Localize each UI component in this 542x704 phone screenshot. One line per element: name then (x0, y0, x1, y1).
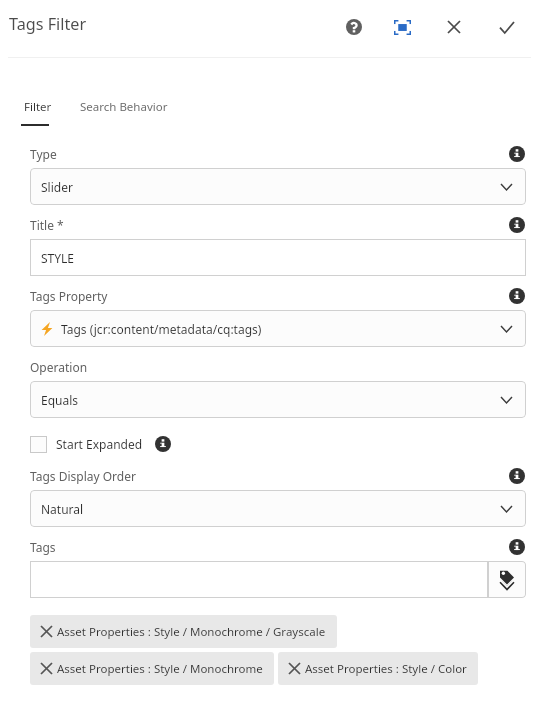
button[interactable]: Filter (21, 58, 54, 126)
staticText: Search Behavior (80, 99, 168, 115)
staticText: Tags Filter (9, 13, 87, 35)
staticText: Slider (41, 179, 73, 195)
button[interactable]: Asset Properties : Style / Color (278, 652, 478, 685)
button[interactable]: Info (508, 287, 526, 305)
button[interactable]: Info (508, 145, 526, 163)
staticText: Tags (30, 539, 56, 555)
button[interactable]: Search Behavior (80, 58, 168, 126)
staticText: Title * (30, 217, 64, 233)
button[interactable]: Asset Properties : Style / Monochrome / … (30, 615, 337, 648)
button[interactable]: Fullscreen (386, 11, 418, 43)
button[interactable]: Start Expanded (30, 435, 172, 453)
button[interactable]: STYLE (30, 239, 526, 276)
button[interactable]: Info (154, 435, 172, 453)
button[interactable]: Tags (jcr:content/metadata/cq:tags) (30, 310, 526, 347)
staticText: Filter (24, 99, 52, 115)
button[interactable]: Equals (30, 381, 526, 418)
staticText: Type (30, 146, 57, 162)
button[interactable]: Done (491, 11, 523, 43)
staticText: Asset Properties : Style / Monochrome / … (57, 624, 326, 640)
button[interactable]: Info (508, 538, 526, 556)
staticText: STYLE (41, 250, 75, 266)
staticText: Equals (41, 392, 79, 408)
button[interactable]: Info (508, 216, 526, 234)
button[interactable]: Help (338, 11, 370, 43)
button[interactable]: Natural (30, 490, 526, 527)
button[interactable] (30, 561, 488, 598)
staticText: Operation (30, 359, 88, 375)
button[interactable]: Close (438, 11, 470, 43)
staticText: Asset Properties : Style / Color (305, 661, 467, 677)
staticText: Start Expanded (56, 436, 143, 452)
button[interactable]: Asset Properties : Style / Monochrome (30, 652, 274, 685)
button[interactable]: Pick tags (488, 561, 526, 598)
staticText: Asset Properties : Style / Monochrome (57, 661, 263, 677)
staticText: Tags Display Order (30, 468, 136, 484)
staticText: Tags (jcr:content/metadata/cq:tags) (61, 321, 262, 337)
button[interactable]: Info (508, 467, 526, 485)
staticText: Natural (41, 501, 84, 517)
staticText: Tags Property (30, 288, 108, 304)
button[interactable]: Slider (30, 168, 526, 205)
